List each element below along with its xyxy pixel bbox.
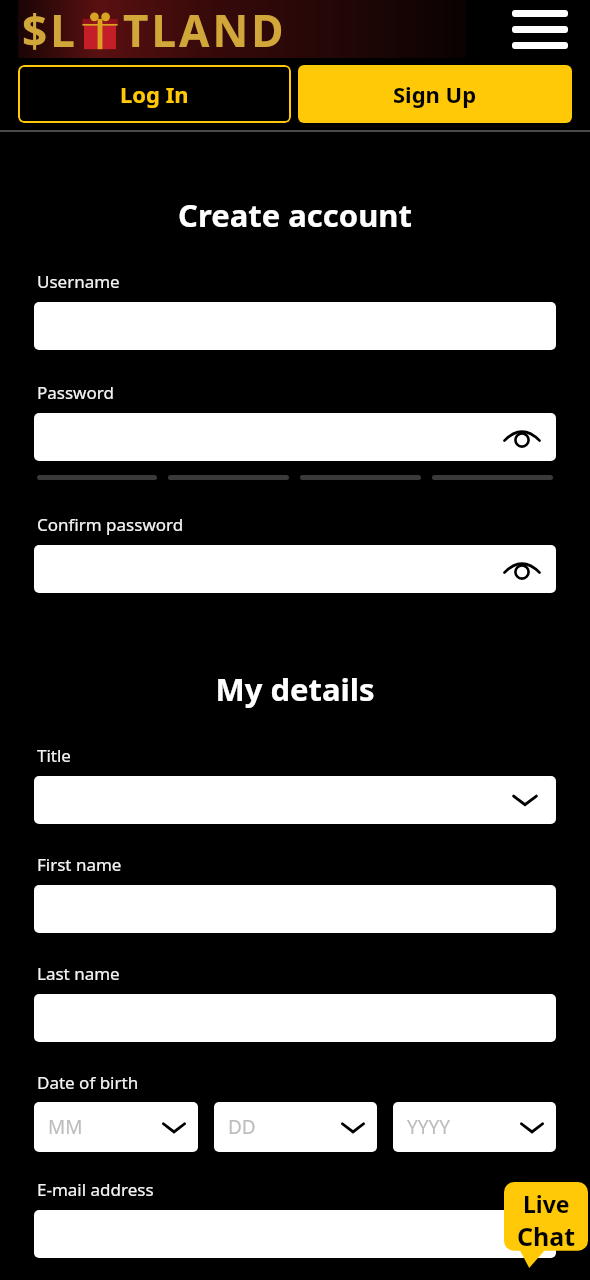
button[interactable]: DD [214,1102,377,1152]
staticText: DD [228,1114,256,1140]
button[interactable]: YYYY [393,1102,556,1152]
staticText: Title [37,744,71,767]
button[interactable] [34,302,556,350]
staticText: Username [37,270,120,293]
staticText: Sign Up [393,79,477,109]
button[interactable] [34,885,556,933]
staticText: TLAND [123,0,287,58]
button[interactable]: Show password [500,422,544,452]
button[interactable]: MM [34,1102,198,1152]
staticText: Date of birth [37,1071,139,1094]
staticText: Chat [517,1219,576,1253]
staticText: $L [22,0,78,58]
staticText: Confirm password [37,513,184,536]
staticText: Password [37,381,114,404]
staticText: Live [523,1188,570,1219]
button[interactable]: Log In [18,65,291,123]
staticText: E-mail address [37,1178,154,1201]
staticText: First name [37,853,122,876]
button[interactable]: Show password [500,554,544,584]
button[interactable] [34,1210,556,1258]
button[interactable]: Slotland home [22,0,287,58]
button[interactable]: Show password [34,545,556,593]
button[interactable]: Show password [34,413,556,461]
staticText: Create account [0,194,590,236]
staticText: My details [0,668,590,710]
staticText: MM [48,1114,83,1140]
button[interactable] [34,776,556,824]
staticText: Last name [37,962,120,985]
staticText: YYYY [407,1114,451,1140]
button[interactable] [34,994,556,1042]
button[interactable]: Live Chat [504,1182,588,1268]
staticText: Log In [120,79,189,109]
button[interactable]: Menu [512,10,568,49]
button[interactable]: Sign Up [298,65,572,123]
